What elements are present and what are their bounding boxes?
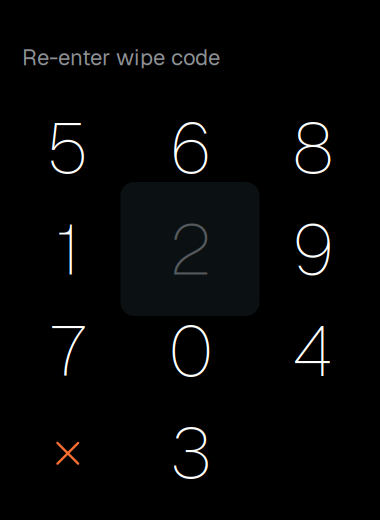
button[interactable]: 6 [129, 98, 252, 198]
staticText: 3 [170, 408, 212, 498]
staticText: 5 [46, 103, 89, 193]
staticText: 6 [169, 103, 212, 193]
button[interactable]: Delete [6, 403, 129, 503]
staticText: Re-enter wipe code [22, 43, 220, 72]
button[interactable]: 8 [252, 98, 375, 198]
button[interactable]: 7 [6, 301, 129, 401]
staticText: 2 [169, 205, 212, 295]
button[interactable]: 2 [129, 200, 252, 300]
staticText: 8 [292, 103, 334, 193]
staticText: 9 [292, 205, 335, 295]
staticText: 1 [56, 205, 80, 295]
button[interactable]: 3 [129, 403, 252, 503]
button[interactable]: 5 [6, 98, 129, 198]
button[interactable]: 1 [6, 200, 129, 300]
staticText: 7 [51, 306, 85, 396]
button[interactable]: 4 [252, 301, 375, 401]
button[interactable]: 9 [252, 200, 375, 300]
staticText: 0 [169, 306, 213, 396]
staticText: 4 [292, 306, 334, 396]
button[interactable]: 0 [129, 301, 252, 401]
